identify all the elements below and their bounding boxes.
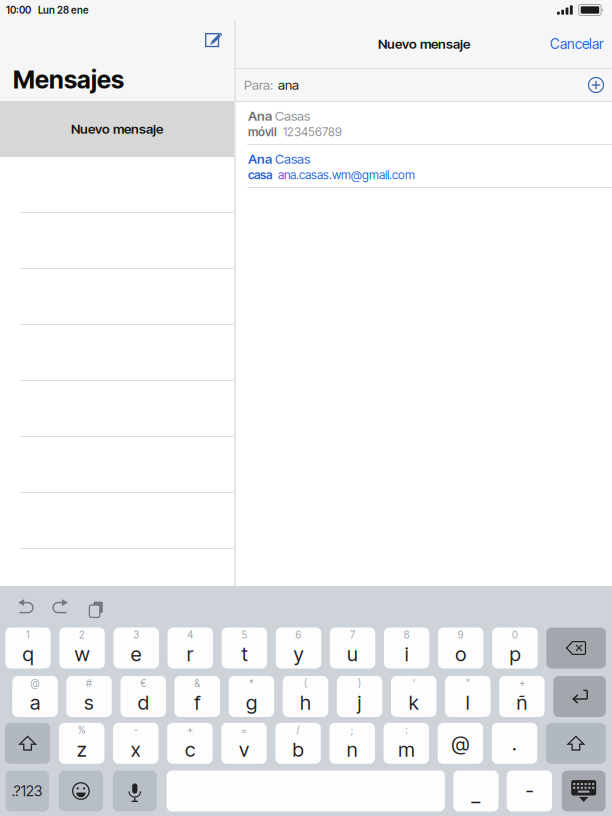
button[interactable]: Emoji bbox=[59, 770, 103, 811]
staticText: x bbox=[131, 737, 141, 761]
button[interactable]: % bbox=[59, 723, 104, 764]
staticText: .?123 bbox=[12, 782, 43, 800]
staticText: 7 bbox=[350, 629, 355, 641]
button[interactable]: + bbox=[167, 723, 213, 764]
button[interactable]: " bbox=[445, 676, 490, 717]
staticText: v bbox=[239, 737, 249, 761]
staticText: s bbox=[84, 690, 94, 715]
staticText: casa bbox=[248, 168, 272, 182]
button[interactable]: Paste bbox=[81, 594, 107, 620]
button[interactable]: Redo bbox=[46, 594, 74, 620]
button[interactable]: Add contact bbox=[588, 77, 604, 93]
staticText: a bbox=[30, 690, 40, 715]
button[interactable]: Dictation bbox=[113, 770, 157, 811]
button[interactable]: Undo bbox=[12, 594, 40, 620]
button[interactable]: - bbox=[113, 723, 158, 764]
staticText: b bbox=[293, 737, 304, 761]
staticText: Para: bbox=[244, 77, 273, 93]
button[interactable]: 5 bbox=[222, 627, 267, 668]
staticText: Nuevo mensaje bbox=[71, 121, 163, 137]
staticText: 0 bbox=[512, 629, 518, 641]
staticText: Casas bbox=[275, 108, 310, 124]
staticText: j bbox=[358, 690, 362, 715]
button[interactable]: - bbox=[507, 770, 552, 811]
button[interactable]: € bbox=[120, 676, 166, 717]
staticText: Lun 28 ene bbox=[38, 4, 89, 16]
staticText: @ bbox=[451, 731, 469, 755]
staticText: n bbox=[347, 737, 358, 761]
staticText: + bbox=[519, 677, 525, 689]
button[interactable]: 0 bbox=[492, 627, 538, 668]
staticText: . bbox=[512, 731, 517, 755]
staticText: m bbox=[398, 737, 414, 761]
staticText: € bbox=[140, 677, 146, 689]
button[interactable]: 8 bbox=[384, 627, 429, 668]
staticText: 9 bbox=[458, 629, 464, 641]
button[interactable]: 3 bbox=[113, 627, 159, 668]
button[interactable]: _ bbox=[453, 770, 498, 811]
staticText: 1 bbox=[26, 629, 30, 641]
staticText: ana bbox=[278, 77, 299, 93]
button[interactable]: + bbox=[499, 676, 545, 717]
staticText: u bbox=[347, 642, 358, 666]
staticText: 2 bbox=[79, 629, 85, 641]
button[interactable]: .?123 bbox=[6, 770, 49, 811]
staticText: Nuevo mensaje bbox=[378, 36, 470, 52]
button[interactable]: . bbox=[492, 723, 537, 764]
button[interactable]: / bbox=[275, 723, 321, 764]
staticText: Casas bbox=[275, 151, 310, 167]
staticText: " bbox=[466, 677, 470, 689]
button[interactable]: * bbox=[229, 676, 274, 717]
button[interactable]: 9 bbox=[438, 627, 483, 668]
button[interactable]: ) bbox=[337, 676, 382, 717]
staticText: z bbox=[77, 737, 87, 761]
button[interactable]: & bbox=[175, 676, 220, 717]
staticText: 10:00 bbox=[6, 4, 31, 16]
button[interactable]: Shift right bbox=[546, 723, 606, 764]
staticText: p bbox=[509, 642, 520, 666]
button[interactable]: 7 bbox=[330, 627, 375, 668]
staticText: = bbox=[241, 724, 247, 736]
button[interactable]: Cancelar bbox=[544, 30, 610, 57]
button[interactable]: ' bbox=[391, 676, 436, 717]
staticText: ( bbox=[304, 677, 307, 689]
staticText: & bbox=[194, 677, 200, 689]
button[interactable] bbox=[167, 770, 445, 811]
button[interactable]: ; bbox=[329, 723, 375, 764]
staticText: y bbox=[293, 642, 303, 666]
button[interactable]: 4 bbox=[168, 627, 213, 668]
button[interactable]: Delete bbox=[546, 627, 606, 668]
button[interactable]: 2 bbox=[59, 627, 105, 668]
button[interactable]: Nuevo mensaje bbox=[0, 101, 234, 157]
staticText: Ana bbox=[248, 151, 272, 167]
staticText: l bbox=[466, 690, 470, 715]
button[interactable]: Ana bbox=[236, 145, 612, 188]
staticText: 8 bbox=[404, 629, 410, 641]
button[interactable]: 6 bbox=[276, 627, 321, 668]
staticText: 6 bbox=[295, 629, 301, 641]
button[interactable]: : bbox=[384, 723, 429, 764]
button[interactable]: @ bbox=[12, 676, 58, 717]
staticText: h bbox=[300, 690, 311, 715]
button[interactable]: @ bbox=[438, 723, 483, 764]
staticText: i bbox=[405, 642, 409, 666]
staticText: móvil bbox=[248, 125, 277, 139]
button[interactable]: # bbox=[66, 676, 112, 717]
staticText: o bbox=[455, 642, 466, 666]
staticText: 4 bbox=[187, 629, 193, 641]
button[interactable]: ( bbox=[283, 676, 328, 717]
staticText: + bbox=[187, 724, 193, 736]
staticText: q bbox=[22, 642, 33, 666]
button[interactable]: 1 bbox=[5, 627, 51, 668]
button[interactable]: Return bbox=[553, 676, 606, 717]
button[interactable]: = bbox=[221, 723, 267, 764]
button[interactable]: Ana bbox=[236, 102, 612, 145]
button[interactable]: Hide keyboard bbox=[562, 770, 606, 811]
button[interactable]: Compose bbox=[200, 25, 228, 53]
staticText: % bbox=[78, 724, 86, 736]
staticText: * bbox=[249, 677, 254, 689]
staticText: ana.casas.wm@gmail.com bbox=[278, 168, 415, 182]
button[interactable]: Shift bbox=[5, 723, 50, 764]
